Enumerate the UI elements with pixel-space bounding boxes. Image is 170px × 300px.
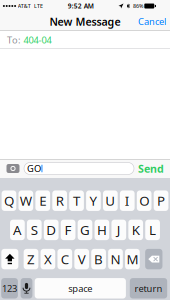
staticText: J bbox=[117, 221, 121, 239]
staticText: To: bbox=[7, 34, 21, 46]
staticText: 404-04 bbox=[23, 34, 51, 46]
button[interactable]: return bbox=[130, 278, 167, 298]
staticText: R bbox=[56, 192, 64, 209]
button[interactable]: J bbox=[111, 220, 126, 240]
button[interactable]: Take photo bbox=[2, 161, 24, 175]
button[interactable]: Y bbox=[86, 190, 101, 211]
button[interactable]: A bbox=[10, 220, 25, 240]
staticText: H bbox=[97, 221, 107, 239]
button[interactable]: N bbox=[108, 249, 123, 269]
staticText: D bbox=[46, 221, 56, 239]
button[interactable]: S bbox=[27, 220, 42, 240]
button[interactable]: X bbox=[40, 249, 55, 269]
staticText: T bbox=[73, 192, 80, 209]
button[interactable]: Cancel bbox=[138, 12, 170, 31]
staticText: New Message bbox=[49, 14, 120, 29]
staticText: AT&T bbox=[18, 2, 31, 10]
button[interactable]: W bbox=[18, 190, 33, 211]
button[interactable]: U bbox=[103, 190, 118, 211]
button[interactable]: 123 bbox=[1, 278, 18, 298]
staticText: 9:52 AM bbox=[68, 2, 94, 10]
staticText: F bbox=[65, 221, 72, 239]
staticText: GO bbox=[27, 162, 41, 175]
staticText: G bbox=[80, 221, 90, 239]
staticText: LTE bbox=[34, 2, 43, 10]
staticText: A bbox=[13, 221, 22, 239]
button[interactable]: O bbox=[137, 190, 151, 211]
button[interactable]: H bbox=[94, 220, 109, 240]
staticText: Z bbox=[27, 250, 35, 268]
button[interactable]: V bbox=[74, 249, 89, 269]
staticText: 86% bbox=[133, 2, 143, 10]
staticText: return bbox=[134, 282, 162, 294]
staticText: space bbox=[68, 282, 92, 294]
staticText: U bbox=[105, 192, 115, 209]
button[interactable]: Send bbox=[134, 161, 168, 175]
button[interactable]: G bbox=[78, 220, 92, 240]
staticText: K bbox=[132, 221, 140, 239]
button[interactable]: Q bbox=[2, 190, 16, 211]
staticText: Send bbox=[138, 161, 164, 176]
button[interactable]: D bbox=[44, 220, 58, 240]
staticText: I bbox=[125, 192, 130, 209]
staticText: X bbox=[44, 250, 52, 268]
button[interactable]: B bbox=[91, 249, 106, 269]
staticText: B bbox=[94, 250, 103, 268]
staticText: 123 bbox=[2, 282, 17, 294]
button[interactable]: Dictate bbox=[21, 278, 32, 298]
button[interactable]: E bbox=[35, 190, 50, 211]
button[interactable]: T bbox=[69, 190, 84, 211]
button[interactable]: I bbox=[120, 190, 135, 211]
button[interactable]: F bbox=[61, 220, 75, 240]
button[interactable]: Z bbox=[24, 249, 38, 269]
button[interactable]: K bbox=[128, 220, 143, 240]
button[interactable]: L bbox=[145, 220, 160, 240]
staticText: Y bbox=[89, 192, 97, 209]
staticText: C bbox=[61, 250, 69, 268]
staticText: S bbox=[31, 221, 38, 239]
staticText: N bbox=[110, 250, 120, 268]
staticText: L bbox=[149, 221, 156, 239]
staticText: Cancel bbox=[138, 15, 166, 28]
button[interactable]: space bbox=[35, 278, 126, 298]
staticText: Q bbox=[4, 192, 14, 209]
staticText: W bbox=[20, 192, 32, 209]
staticText: O bbox=[139, 192, 149, 209]
staticText: M bbox=[126, 250, 138, 268]
staticText: P bbox=[157, 192, 165, 209]
button[interactable]: C bbox=[57, 249, 72, 269]
staticText: V bbox=[78, 250, 86, 268]
button[interactable]: To: bbox=[0, 31, 170, 49]
button[interactable]: R bbox=[52, 190, 67, 211]
button[interactable]: P bbox=[154, 190, 168, 211]
staticText: E bbox=[39, 192, 46, 209]
button[interactable]: Shift bbox=[1, 249, 18, 269]
button[interactable]: Delete bbox=[145, 249, 162, 269]
button[interactable]: M bbox=[125, 249, 140, 269]
